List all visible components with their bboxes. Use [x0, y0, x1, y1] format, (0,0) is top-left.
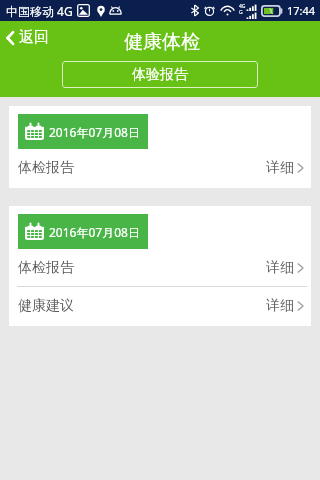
staticText: 体检报告	[18, 159, 74, 177]
staticText: 中国移动 4G	[6, 3, 73, 19]
button[interactable]: 体检报告	[9, 149, 311, 186]
staticText: 2016年07月08日	[49, 224, 140, 240]
staticText: 详细	[266, 159, 294, 177]
button[interactable]: 健康建议	[9, 287, 311, 324]
staticText: 体验报告	[132, 66, 188, 84]
staticText: 4G	[239, 3, 246, 10]
staticText: 返回	[19, 28, 49, 47]
staticText: 17:44	[287, 3, 316, 18]
staticText: 健康体检	[124, 30, 200, 54]
staticText: 健康建议	[18, 297, 74, 315]
staticText: 详细	[266, 297, 294, 315]
staticText: 体检报告	[18, 259, 74, 277]
button[interactable]: 体验报告	[62, 61, 258, 88]
staticText: G	[239, 9, 243, 16]
staticText: 2016年07月08日	[49, 124, 140, 140]
button[interactable]: 返回 Back	[2, 25, 55, 50]
button[interactable]: 体检报告	[9, 249, 311, 286]
staticText: 详细	[266, 259, 294, 277]
